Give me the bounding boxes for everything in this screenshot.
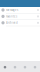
button[interactable]: Search [10,61,20,72]
button[interactable]: Alerts [20,61,30,72]
button[interactable]: Messages [0,61,10,72]
button[interactable]: Favorites [0,13,40,19]
button[interactable]: Messages [0,7,40,13]
staticText: Archived [6,21,18,24]
staticText: Favorites [6,15,17,18]
button[interactable]: Profile [30,61,40,72]
staticText: Messages [6,8,18,12]
button[interactable]: Archived [0,20,40,26]
